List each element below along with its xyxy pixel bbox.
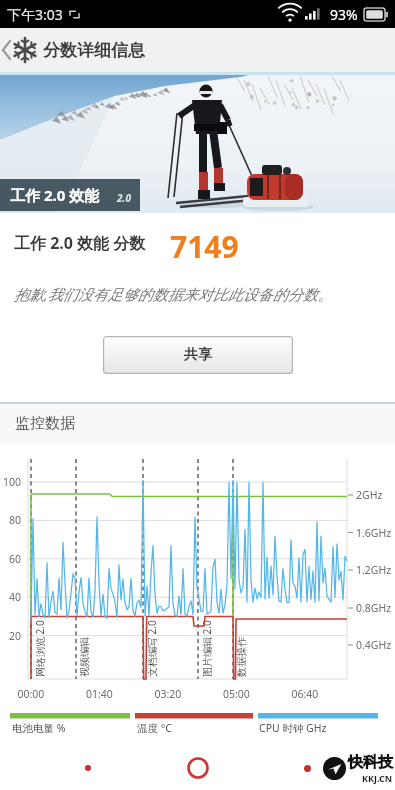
button[interactable] xyxy=(183,753,213,783)
staticText: 快科技 xyxy=(348,753,393,772)
button[interactable] xyxy=(76,756,100,780)
staticText: 下午3:03 xyxy=(7,5,63,24)
staticText: 93% xyxy=(330,5,358,24)
staticText: 抱歉,我们没有足够的数据来对比此设备的分数。 xyxy=(14,284,333,304)
staticText: KKJ.CN xyxy=(362,772,393,784)
button[interactable]: 共享 xyxy=(103,336,293,374)
staticText: 监控数据 xyxy=(15,414,75,433)
staticText: 分数详细信息 xyxy=(43,40,145,61)
staticText: 7149 xyxy=(170,226,239,267)
staticText: 共享 xyxy=(184,346,212,364)
button[interactable] xyxy=(0,28,12,72)
staticText: 工作 2.0 效能 分数 xyxy=(14,232,146,254)
button[interactable] xyxy=(296,757,318,779)
